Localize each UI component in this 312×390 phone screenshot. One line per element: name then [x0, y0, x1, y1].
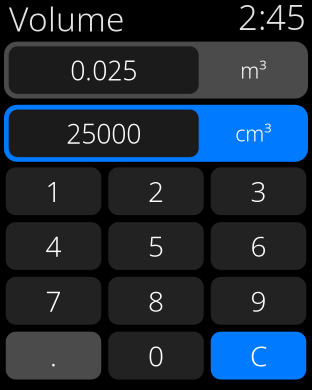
staticText: 8 [148, 282, 164, 320]
button[interactable]: 0 [108, 332, 204, 379]
button[interactable]: 3 [211, 167, 306, 215]
button[interactable]: 4 [6, 222, 101, 270]
button[interactable]: 25000 [4, 105, 308, 162]
staticText: 3 [250, 172, 266, 210]
button[interactable]: 2 [108, 167, 204, 215]
staticText: 0.025 [70, 52, 137, 88]
staticText: 2:45 [238, 0, 306, 40]
button[interactable]: 9 [211, 277, 306, 325]
staticText: 2 [148, 172, 164, 210]
button[interactable]: 1 [6, 167, 101, 215]
staticText: 0 [148, 336, 164, 375]
button[interactable]: C [211, 332, 306, 379]
staticText: 25000 [66, 115, 141, 151]
staticText: 6 [250, 227, 266, 265]
staticText: 4 [45, 227, 61, 265]
staticText: Volume [9, 0, 124, 41]
button[interactable]: 5 [108, 222, 204, 270]
button[interactable]: 8 [108, 277, 204, 325]
button[interactable]: 0.025 [4, 42, 308, 99]
staticText: 5 [148, 227, 164, 265]
staticText: cm³ [235, 119, 271, 148]
staticText: 9 [250, 282, 266, 320]
staticText: C [250, 336, 267, 375]
staticText: m³ [240, 56, 266, 85]
button[interactable]: 6 [211, 222, 306, 270]
staticText: . [50, 336, 57, 375]
button[interactable]: . [6, 332, 101, 379]
staticText: 7 [45, 282, 61, 320]
button[interactable]: 7 [6, 277, 101, 325]
staticText: 1 [45, 172, 61, 210]
